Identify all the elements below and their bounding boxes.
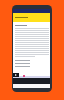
button[interactable]: Play bbox=[13, 73, 19, 77]
button[interactable] bbox=[13, 13, 50, 22]
